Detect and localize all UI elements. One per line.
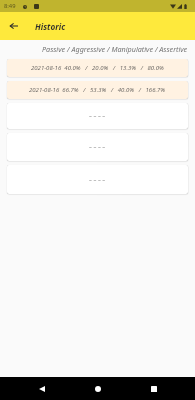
button[interactable]: Back bbox=[2, 14, 26, 38]
staticText: 2021-08-16 40.0% / 20.0% / 13.3% / 80.0% bbox=[31, 64, 164, 72]
staticText: – – – – bbox=[89, 143, 106, 151]
button[interactable]: 2021-08-16 66.7% / 53.3% / 40.0% / 166.7… bbox=[7, 81, 188, 99]
staticText: Passive / Aggressive / Manipulative / As… bbox=[42, 44, 188, 54]
staticText: – – – – bbox=[89, 112, 106, 120]
button[interactable]: Home bbox=[95, 386, 112, 400]
staticText: Historic bbox=[35, 21, 66, 32]
staticText: – – – – bbox=[89, 176, 106, 184]
button[interactable]: Recent apps bbox=[151, 386, 168, 400]
button[interactable]: Back bbox=[39, 386, 56, 400]
staticText: 2021-08-16 66.7% / 53.3% / 40.0% / 166.7… bbox=[29, 86, 166, 94]
button[interactable]: 2021-08-16 40.0% / 20.0% / 13.3% / 80.0% bbox=[7, 59, 188, 77]
staticText: 8:49 bbox=[4, 2, 16, 10]
